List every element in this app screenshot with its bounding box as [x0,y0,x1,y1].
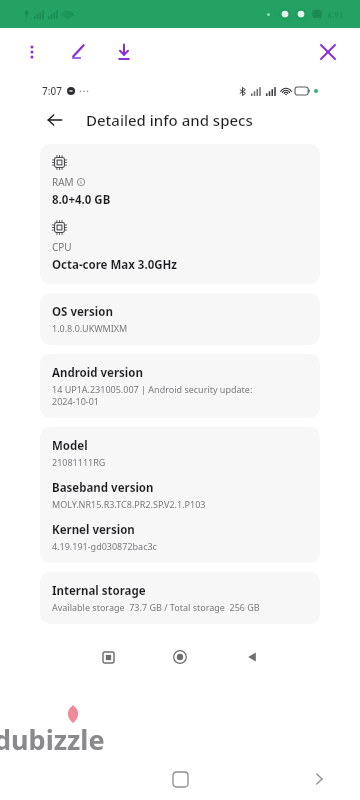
button[interactable]: Download [106,34,142,70]
button[interactable]: Recents [95,644,121,670]
staticText: RAM [52,175,74,189]
staticText: Available storage 73.7 GB / Total storag… [52,601,260,613]
button[interactable]: More options [14,34,50,70]
staticText: 8.0+4.0 GB [52,192,111,208]
staticText: ٨:٢١ [327,8,344,20]
staticText: dubizzle [0,721,105,758]
staticText: OS version [52,304,113,320]
button[interactable]: Android version [40,354,320,418]
button[interactable]: Home [167,644,193,670]
staticText: Kernel version [52,522,135,538]
staticText: 21081111RG [52,456,106,468]
button[interactable]: Back [42,107,68,133]
button[interactable]: Back [239,644,265,670]
staticText: Model [52,438,88,454]
button[interactable]: Close [310,34,346,70]
button[interactable]: Edit [60,34,96,70]
staticText: CPU [52,240,72,254]
button[interactable]: OS version [40,293,320,345]
button[interactable]: RAM [40,144,320,284]
staticText: Detailed info and specs [86,110,253,130]
staticText: Octa-core Max 3.0GHz [52,257,178,273]
staticText: MOLY.NR15.R3.TC8.PR2.SP.V2.1.P103 [52,498,206,510]
staticText: Android version [52,365,143,381]
staticText: 2024-10-01 [52,395,99,407]
staticText: 14 UP1A.231005.007 | Android security up… [52,383,253,395]
button[interactable]: Home [163,762,197,796]
button[interactable]: Internal storage [40,572,320,624]
button[interactable]: Model [40,427,320,563]
staticText: Baseband version [52,480,154,496]
staticText: 7:07 [42,84,62,98]
staticText: Internal storage [52,583,146,599]
staticText: 1.0.8.0.UKWMIXM [52,322,128,334]
button[interactable]: Forward [302,762,336,796]
staticText: 4.19.191-gd030872bac3c [52,540,157,552]
